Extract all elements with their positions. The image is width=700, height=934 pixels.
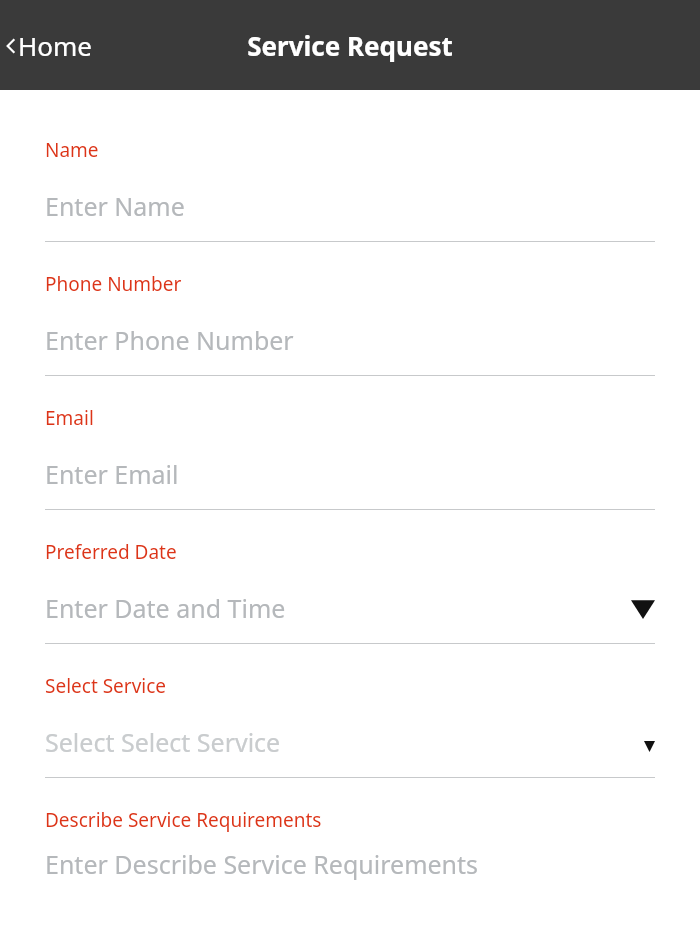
button[interactable]: Describe Service Requirements [45, 807, 655, 934]
button[interactable]: Preferred Date [45, 539, 655, 644]
staticText: Service Request [247, 28, 453, 63]
staticText: Select Select Service [45, 725, 281, 759]
staticText: Select Service [45, 673, 167, 699]
staticText: Email [45, 405, 94, 431]
staticText: Name [45, 137, 99, 163]
staticText: Describe Service Requirements [45, 807, 322, 833]
staticText: Enter Phone Number [45, 323, 294, 357]
button[interactable]: Open service list [644, 741, 655, 752]
button[interactable]: Home [0, 20, 102, 71]
button[interactable]: Select Service [45, 673, 655, 778]
button[interactable]: Email [45, 405, 655, 510]
staticText: Enter Date and Time [45, 591, 286, 625]
button[interactable]: Name [45, 137, 655, 242]
staticText: Enter Email [45, 457, 179, 491]
staticText: Phone Number [45, 271, 182, 297]
staticText: Preferred Date [45, 539, 177, 565]
staticText: Enter Describe Service Requirements [45, 847, 479, 881]
button[interactable]: Phone Number [45, 271, 655, 376]
staticText: Enter Name [45, 189, 185, 223]
staticText: Home [18, 28, 92, 63]
button[interactable]: Open date picker [631, 598, 655, 620]
